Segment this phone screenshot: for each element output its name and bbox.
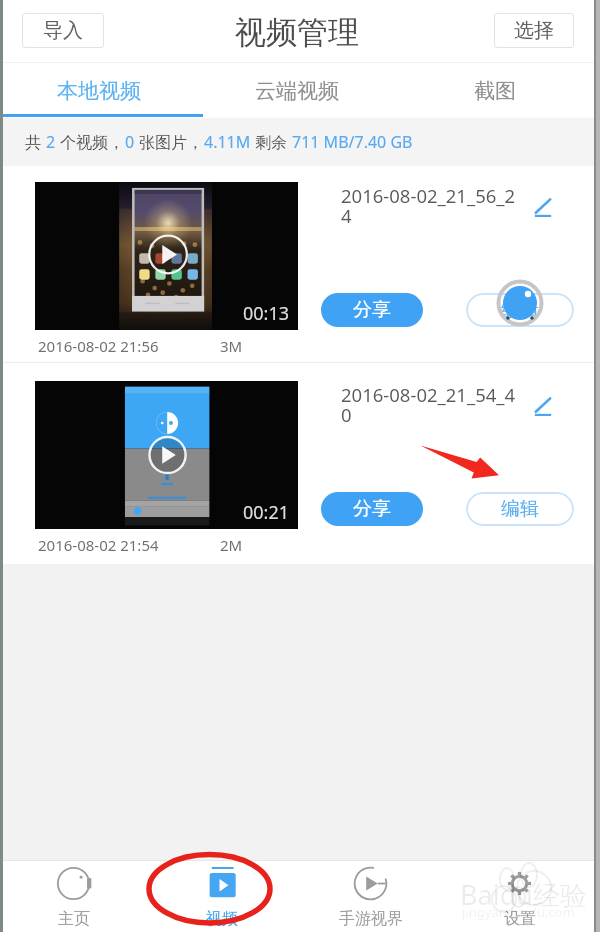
button[interactable]: 00:13 (35, 182, 298, 330)
button[interactable]: 编辑 (466, 293, 574, 327)
staticText: 编辑 (501, 497, 539, 521)
button[interactable]: 主页 (0, 860, 148, 932)
button[interactable]: 选择 (494, 13, 574, 48)
staticText: 手游视界 (339, 909, 403, 929)
staticText: 本地视频 (57, 78, 141, 104)
button[interactable]: 分享 (321, 492, 423, 526)
staticText: 共 (25, 131, 46, 153)
staticText: 0 (125, 131, 135, 153)
staticText: 主页 (58, 909, 90, 929)
staticText: 4.11M (204, 131, 251, 153)
staticText: 2M (220, 535, 243, 555)
staticText: 分享 (353, 497, 391, 521)
button[interactable]: 视频 (148, 860, 296, 932)
staticText: 分享 (353, 298, 391, 322)
button[interactable]: 云端视频 (198, 63, 396, 118)
staticText: 00:21 (243, 500, 290, 525)
staticText: 张图片， (135, 131, 204, 153)
button[interactable]: 截图 (396, 63, 594, 118)
button[interactable]: 设置 (445, 860, 594, 932)
button[interactable]: Rename (531, 196, 555, 220)
staticText: 截图 (474, 78, 516, 104)
staticText: 视频 (206, 909, 238, 929)
staticText: 选择 (514, 18, 554, 43)
staticText: 云端视频 (255, 78, 339, 104)
button[interactable]: 手游视界 (296, 860, 445, 932)
staticText: 剩余 (251, 131, 292, 153)
staticText: 00:13 (243, 301, 290, 326)
button[interactable]: 00:21 (35, 381, 298, 529)
staticText: jingyan.baidu.com (462, 903, 575, 921)
staticText: Baidu经验 (460, 876, 587, 913)
button[interactable]: 导入 (22, 13, 104, 48)
staticText: 2016-08-02_21_54_4 0 (341, 382, 531, 427)
staticText: 设置 (504, 909, 536, 929)
staticText: 视频管理 (235, 13, 359, 52)
button[interactable]: Rename (531, 395, 555, 419)
staticText: 2 (46, 131, 56, 153)
staticText: 2016-08-02 21:56 (38, 336, 159, 356)
button[interactable]: 分享 (321, 293, 423, 327)
staticText: 711 MB/7.40 GB (292, 131, 413, 153)
staticText: 3M (220, 336, 243, 356)
button[interactable]: 编辑 (466, 492, 574, 526)
staticText: 个视频， (56, 131, 125, 153)
staticText: 2016-08-02 21:54 (38, 535, 159, 555)
staticText: 导入 (43, 18, 83, 43)
staticText: 编辑 (501, 298, 539, 322)
staticText: 2016-08-02_21_56_2 4 (341, 183, 531, 228)
button[interactable]: 本地视频 (0, 63, 198, 118)
